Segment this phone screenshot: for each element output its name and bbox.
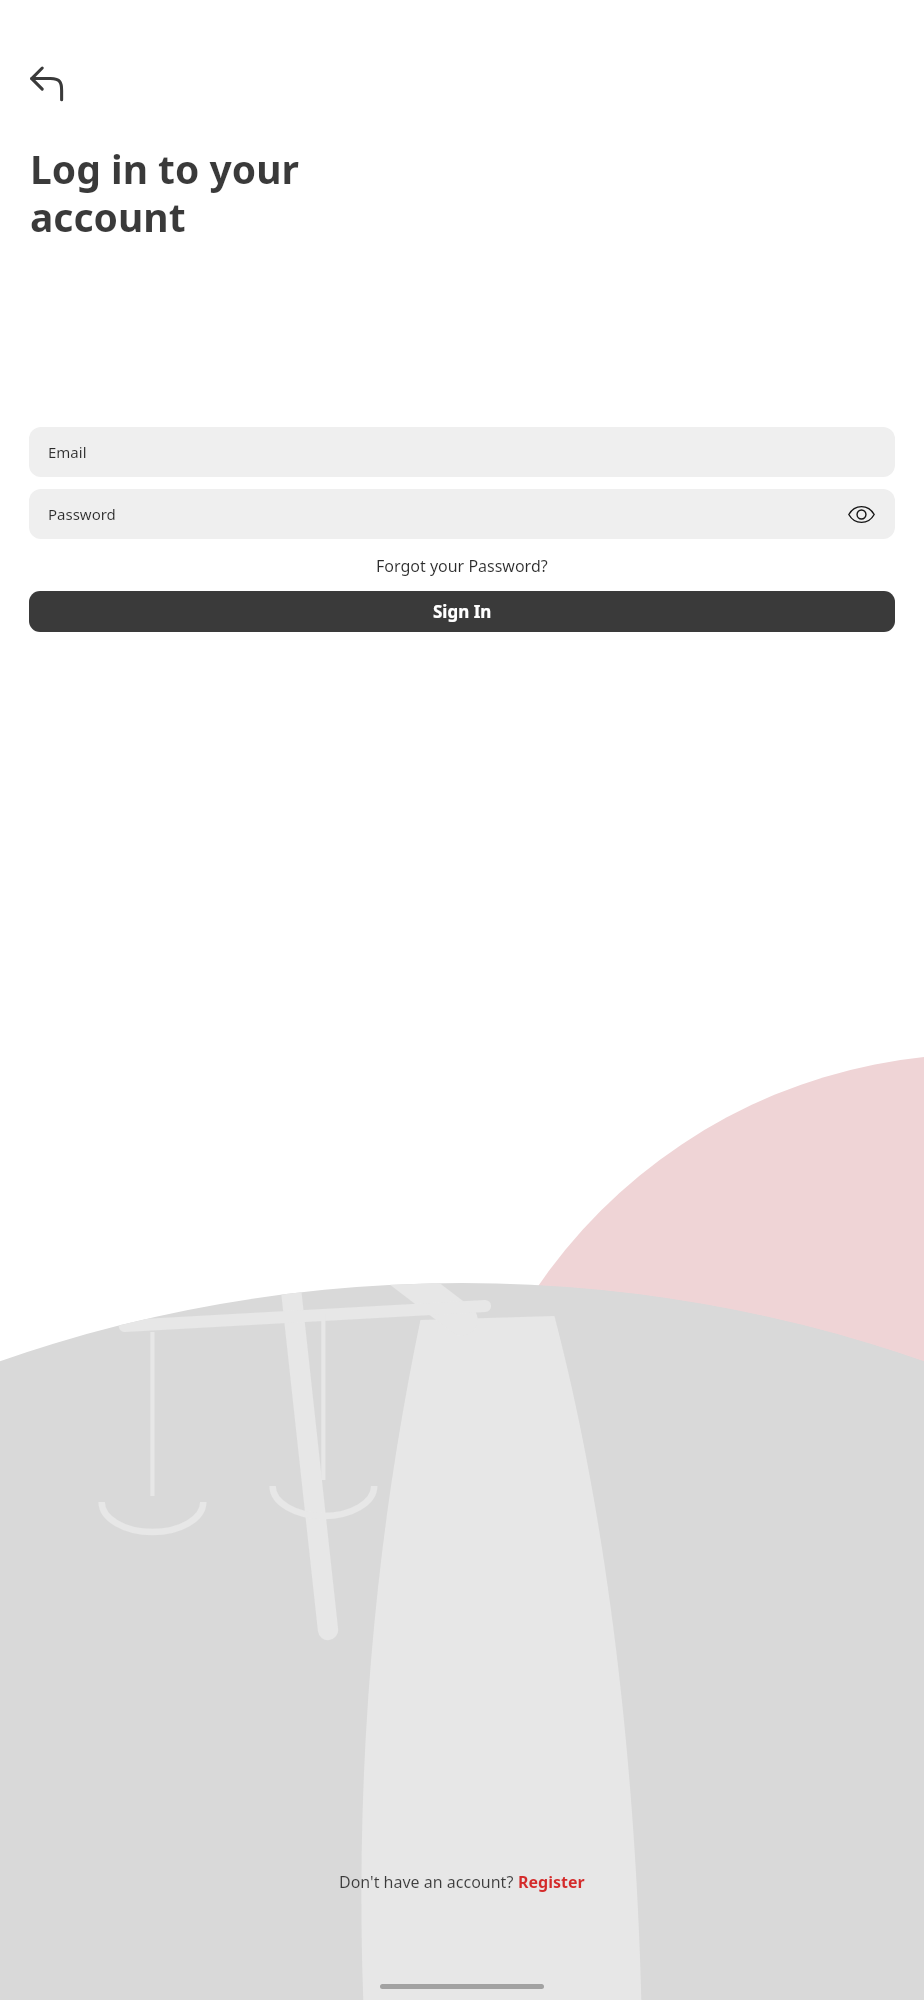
staticText: Don't have an account? — [339, 1871, 518, 1893]
button[interactable]: Don't have an account? — [331, 1867, 593, 1897]
staticText: Register — [518, 1871, 585, 1893]
staticText: Log in to your account — [30, 142, 299, 243]
staticText: Email — [48, 442, 87, 462]
staticText: Password — [48, 504, 116, 524]
button[interactable]: Show password — [844, 497, 878, 531]
button[interactable]: Password — [29, 489, 895, 539]
staticText: Sign In — [433, 600, 492, 623]
button[interactable]: Back — [20, 56, 74, 110]
button[interactable]: Sign In — [29, 591, 895, 632]
staticText: Forgot your Password? — [376, 555, 548, 577]
button[interactable]: Forgot your Password? — [364, 552, 560, 580]
button[interactable]: Email — [29, 427, 895, 477]
